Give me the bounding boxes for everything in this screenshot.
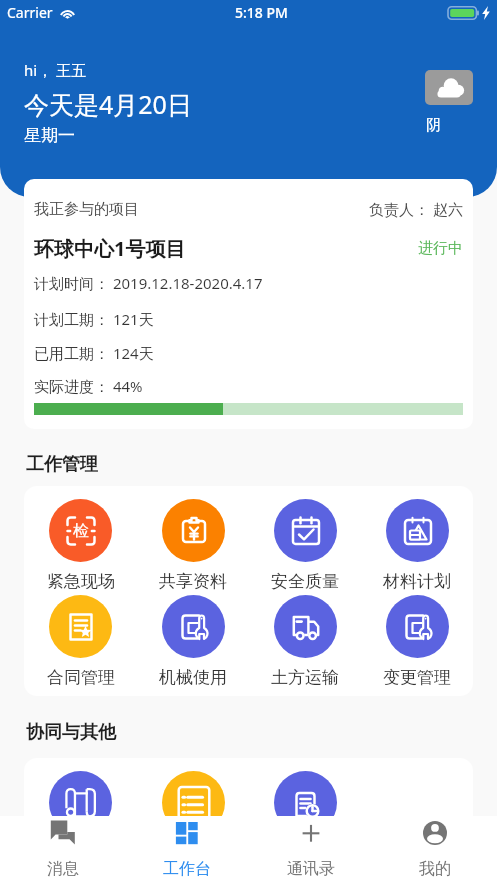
button[interactable]: 任务清单 [137,771,249,864]
button[interactable]: 考勤记录 [249,771,361,864]
staticText: 考勤记录 [271,843,339,864]
staticText: 检 [73,521,89,541]
staticText: 材料计划 [383,571,451,592]
staticText: 工作台 [163,859,211,879]
button[interactable]: 材料计划 [361,499,473,592]
staticText: 阴 [426,116,441,135]
staticText: 计划工期： 121天 [34,309,154,329]
staticText: 计划时间： 2019.12.18-2020.4.17 [34,273,263,293]
staticText: 5:18 PM [235,3,288,22]
staticText: 负责人： 赵六 [369,199,463,219]
staticText: 工作管理 [26,453,98,476]
button[interactable]: 合同管理 [24,595,137,688]
button[interactable]: 机械使用 [137,595,249,688]
staticText: hi， 王五 [24,60,87,80]
staticText: 通讯录 [287,859,335,879]
staticText: 环球中心1号项目 [34,235,186,262]
button[interactable]: 检 [24,499,137,592]
staticText: 机械使用 [159,667,227,688]
button[interactable]: 我正参与的项目 [24,179,473,429]
staticText: 我正参与的项目 [34,200,139,219]
staticText: 紧急现场 [47,571,115,592]
staticText: 星期一 [24,125,75,146]
staticText: 图纸管理 [47,843,115,864]
staticText: 今天是4月20日 [24,87,192,121]
staticText: 已用工期： 124天 [34,343,154,363]
staticText: 土方运输 [271,667,339,688]
button[interactable]: 工作台 [125,816,249,883]
staticText: 安全质量 [271,571,339,592]
staticText: 合同管理 [47,667,115,688]
staticText: 进行中 [418,239,463,258]
staticText: 我的 [419,859,451,879]
staticText: 实际进度： 44% [34,376,143,396]
staticText: 协同与其他 [26,721,116,744]
staticText: 变更管理 [383,667,451,688]
button[interactable]: 通讯录 [249,816,373,883]
button[interactable]: 共享资料 [137,499,249,592]
other: Weather [425,70,473,105]
staticText: 任务清单 [159,843,227,864]
staticText: Carrier [7,3,53,22]
button[interactable]: 安全质量 [249,499,361,592]
staticText: 共享资料 [159,571,227,592]
button[interactable]: 消息 [0,816,125,883]
button[interactable]: 图纸管理 [24,771,137,864]
staticText: 消息 [47,859,79,879]
button[interactable]: 变更管理 [361,595,473,688]
button[interactable]: 土方运输 [249,595,361,688]
button[interactable]: 我的 [373,816,497,883]
